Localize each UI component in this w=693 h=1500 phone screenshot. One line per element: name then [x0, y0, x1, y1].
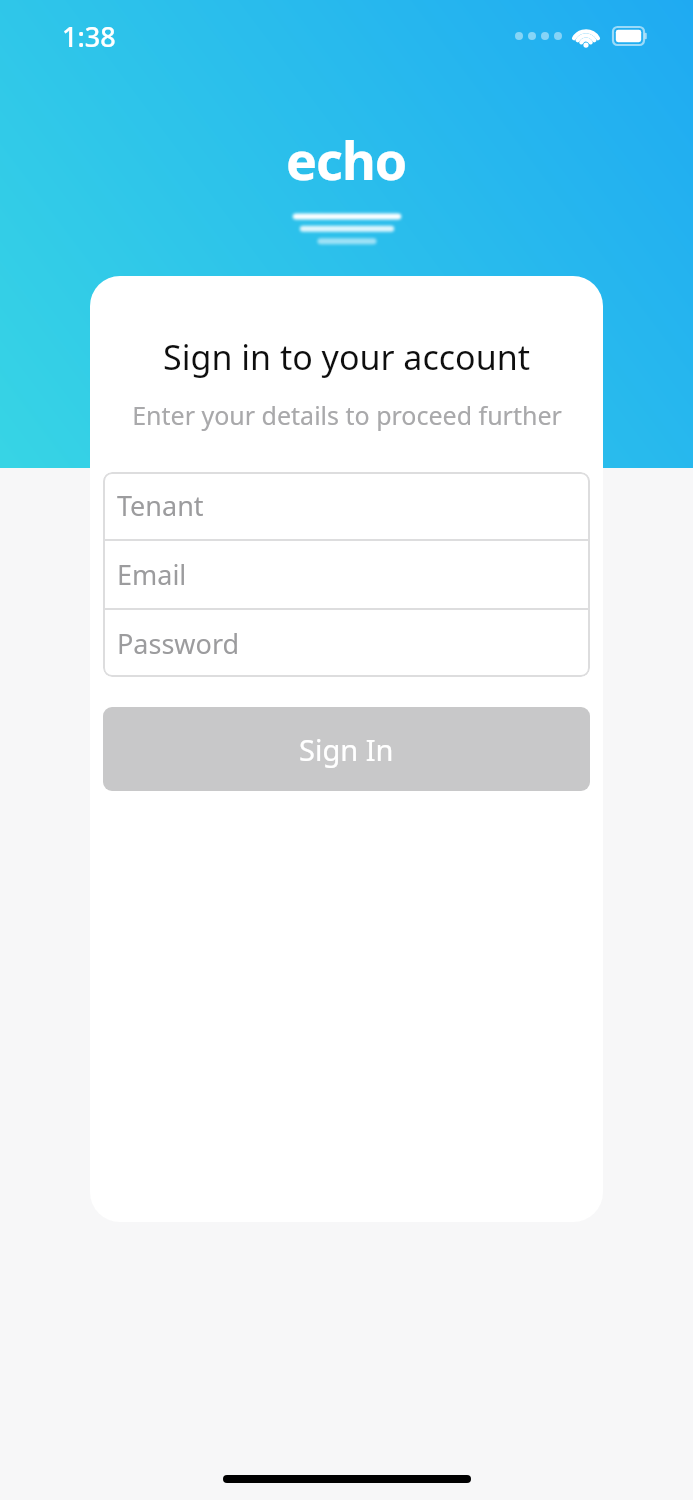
- button[interactable]: Sign In: [103, 707, 590, 791]
- button[interactable]: Tenant: [103, 472, 590, 539]
- staticText: Enter your details to proceed further: [132, 398, 562, 432]
- staticText: Sign In: [299, 730, 394, 769]
- staticText: 1:38: [62, 18, 116, 55]
- button[interactable]: Email: [103, 541, 590, 608]
- staticText: Tenant: [117, 487, 204, 524]
- staticText: Password: [117, 625, 240, 662]
- button[interactable]: Password: [103, 610, 590, 677]
- staticText: echo: [286, 124, 407, 195]
- staticText: Sign in to your account: [163, 334, 530, 380]
- staticText: Email: [117, 556, 187, 593]
